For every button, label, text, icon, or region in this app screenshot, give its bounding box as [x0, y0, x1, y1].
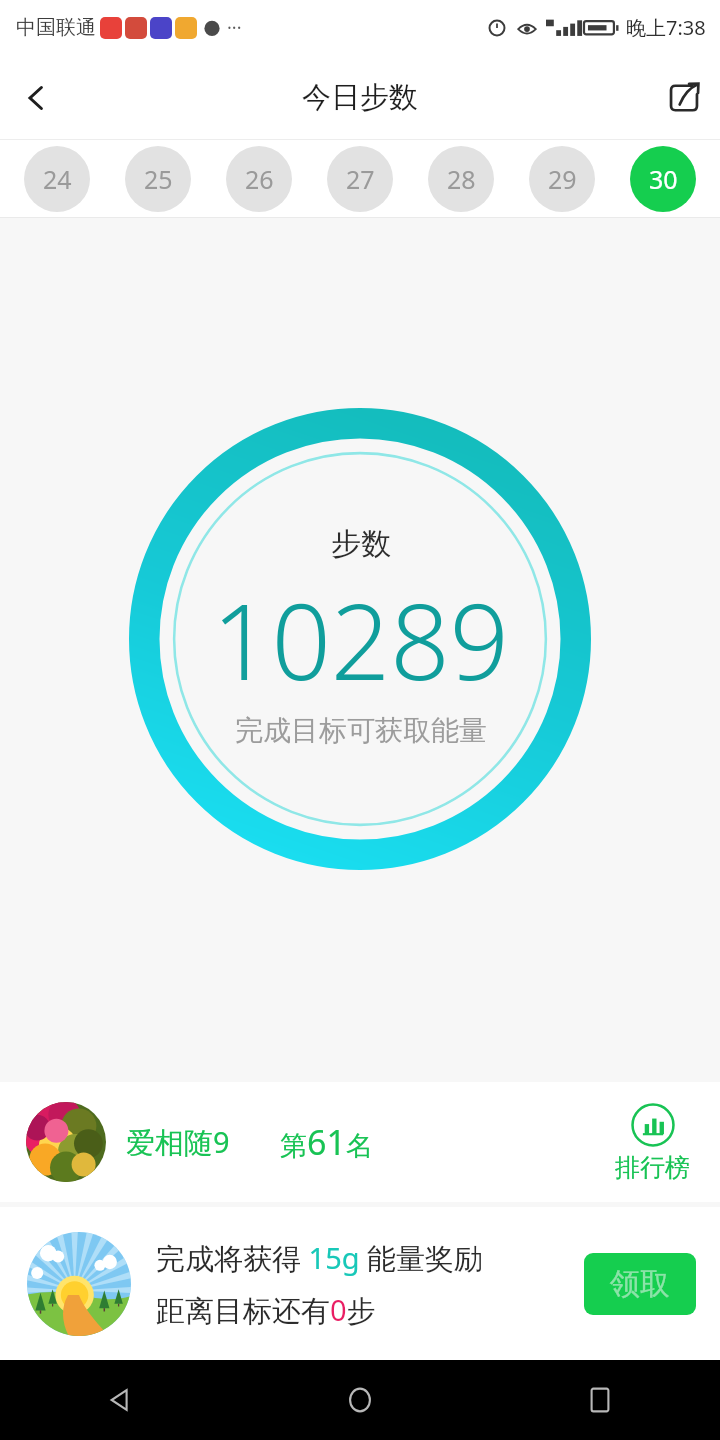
button[interactable]: 领取	[584, 1253, 696, 1315]
button[interactable]: 爱相随9	[0, 1082, 720, 1202]
staticText: 完成将获得 15g 能量奖励	[156, 1238, 484, 1278]
staticText: 29	[548, 162, 577, 196]
button[interactable]: 28	[428, 146, 494, 212]
staticText: 24	[43, 162, 72, 196]
button[interactable]: 排行榜	[611, 1102, 694, 1183]
staticText: 第61名	[280, 1119, 373, 1165]
staticText: 27	[346, 162, 375, 196]
staticText: 晚上7:38	[626, 14, 706, 41]
button[interactable]: 25	[125, 146, 191, 212]
staticText: 爱相随9	[126, 1122, 230, 1162]
staticText: 领取	[610, 1265, 670, 1303]
button[interactable]: Back	[0, 62, 72, 134]
staticText: 28	[447, 162, 476, 196]
staticText: 26	[245, 162, 274, 196]
staticText: 完成目标可获取能量	[235, 713, 487, 748]
button[interactable]: 29	[529, 146, 595, 212]
staticText: 距离目标还有0步	[156, 1290, 376, 1330]
staticText: 今日步数	[302, 79, 418, 116]
button[interactable]: 26	[226, 146, 292, 212]
staticText: 中国联通	[16, 15, 96, 40]
button[interactable]: Back	[0, 1360, 240, 1440]
button[interactable]: Share	[648, 62, 720, 134]
button[interactable]: Recent apps	[480, 1360, 720, 1440]
button[interactable]: 27	[327, 146, 393, 212]
staticText: ···	[227, 15, 242, 40]
button[interactable]: Home	[240, 1360, 480, 1440]
staticText: 步数	[331, 525, 391, 563]
button[interactable]: 30	[630, 146, 696, 212]
staticText: 30	[649, 162, 678, 196]
button[interactable]: 24	[24, 146, 90, 212]
staticText: 25	[144, 162, 173, 196]
staticText: 10289	[212, 569, 509, 711]
staticText: 排行榜	[615, 1152, 690, 1183]
